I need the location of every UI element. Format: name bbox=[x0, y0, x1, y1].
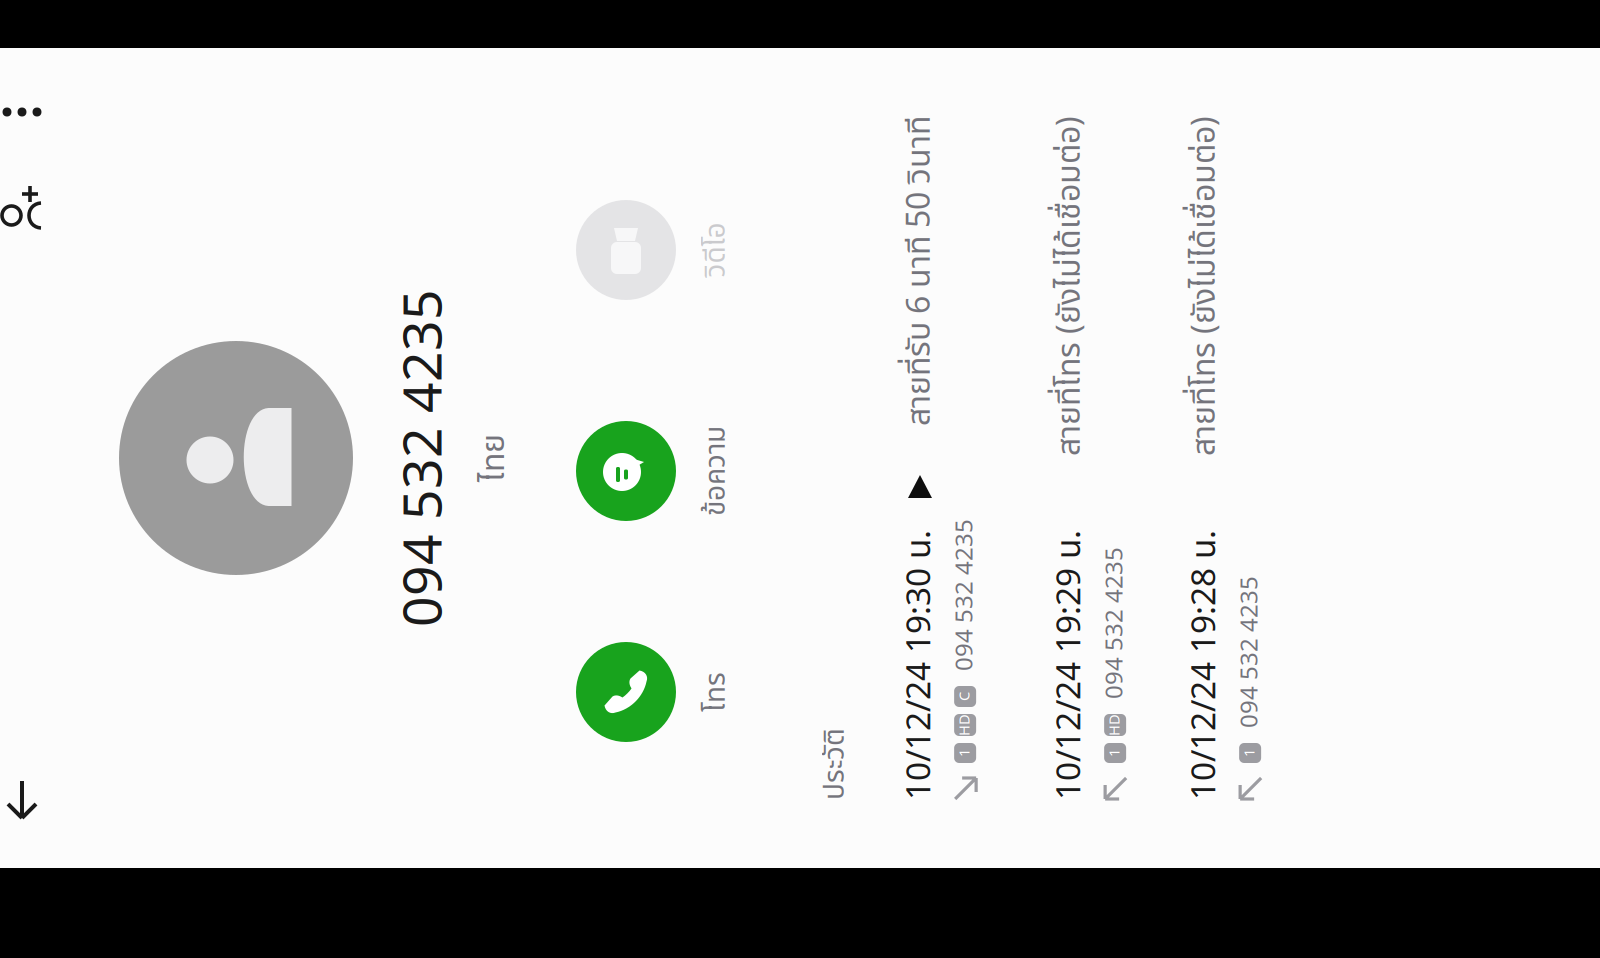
button[interactable]: 10/12/24 19:29 น. bbox=[410, 690, 1230, 771]
button[interactable]: 10/12/24 19:28 น. bbox=[410, 825, 1230, 906]
button[interactable]: ข้อความ bbox=[696, 214, 917, 375]
button[interactable]: 10/12/24 19:30 น. bbox=[410, 540, 1230, 621]
staticText: สายที่โทร (ยังไม่ได้เชื่อมต่อ) bbox=[822, 684, 1162, 732]
button[interactable]: โทร bbox=[475, 214, 696, 375]
staticText: 10/12/24 19:29 น. bbox=[478, 683, 748, 733]
staticText: สายที่รับ 6 นาที 50 วินาที bbox=[852, 534, 1162, 582]
staticText: ประวัติ bbox=[478, 452, 550, 494]
staticText: 094 532 4235 bbox=[579, 735, 731, 771]
button[interactable]: วิดีโอ bbox=[917, 214, 1138, 375]
staticText: 094 532 4235 bbox=[651, 23, 989, 104]
